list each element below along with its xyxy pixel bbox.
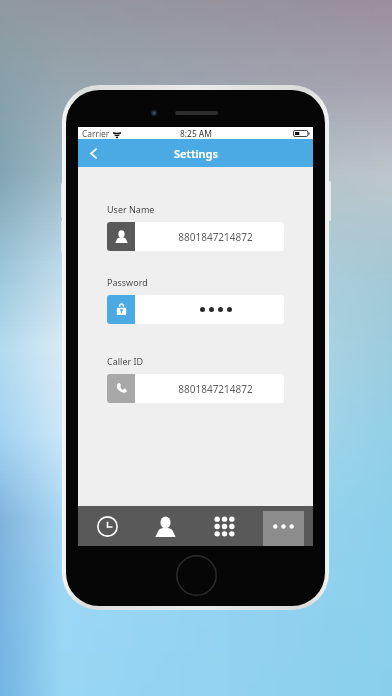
button[interactable]: Back — [78, 139, 110, 167]
staticText: User Name — [107, 203, 155, 215]
staticText: 8801847214872 — [178, 382, 253, 396]
button[interactable]: 8801847214872 — [107, 374, 284, 403]
button[interactable]: More — [263, 511, 304, 546]
staticText: Password — [107, 276, 148, 288]
staticText: Settings — [174, 146, 218, 161]
button[interactable]: Keypad — [204, 511, 245, 546]
button[interactable]: 8801847214872 — [107, 222, 284, 251]
button[interactable] — [107, 295, 284, 324]
button[interactable]: Recents — [87, 511, 127, 546]
staticText: Carrier — [82, 128, 110, 139]
staticText: 8801847214872 — [178, 230, 253, 244]
staticText: 8:25 AM — [180, 128, 213, 139]
staticText: Caller ID — [107, 355, 144, 367]
button[interactable]: Contacts — [145, 511, 186, 546]
